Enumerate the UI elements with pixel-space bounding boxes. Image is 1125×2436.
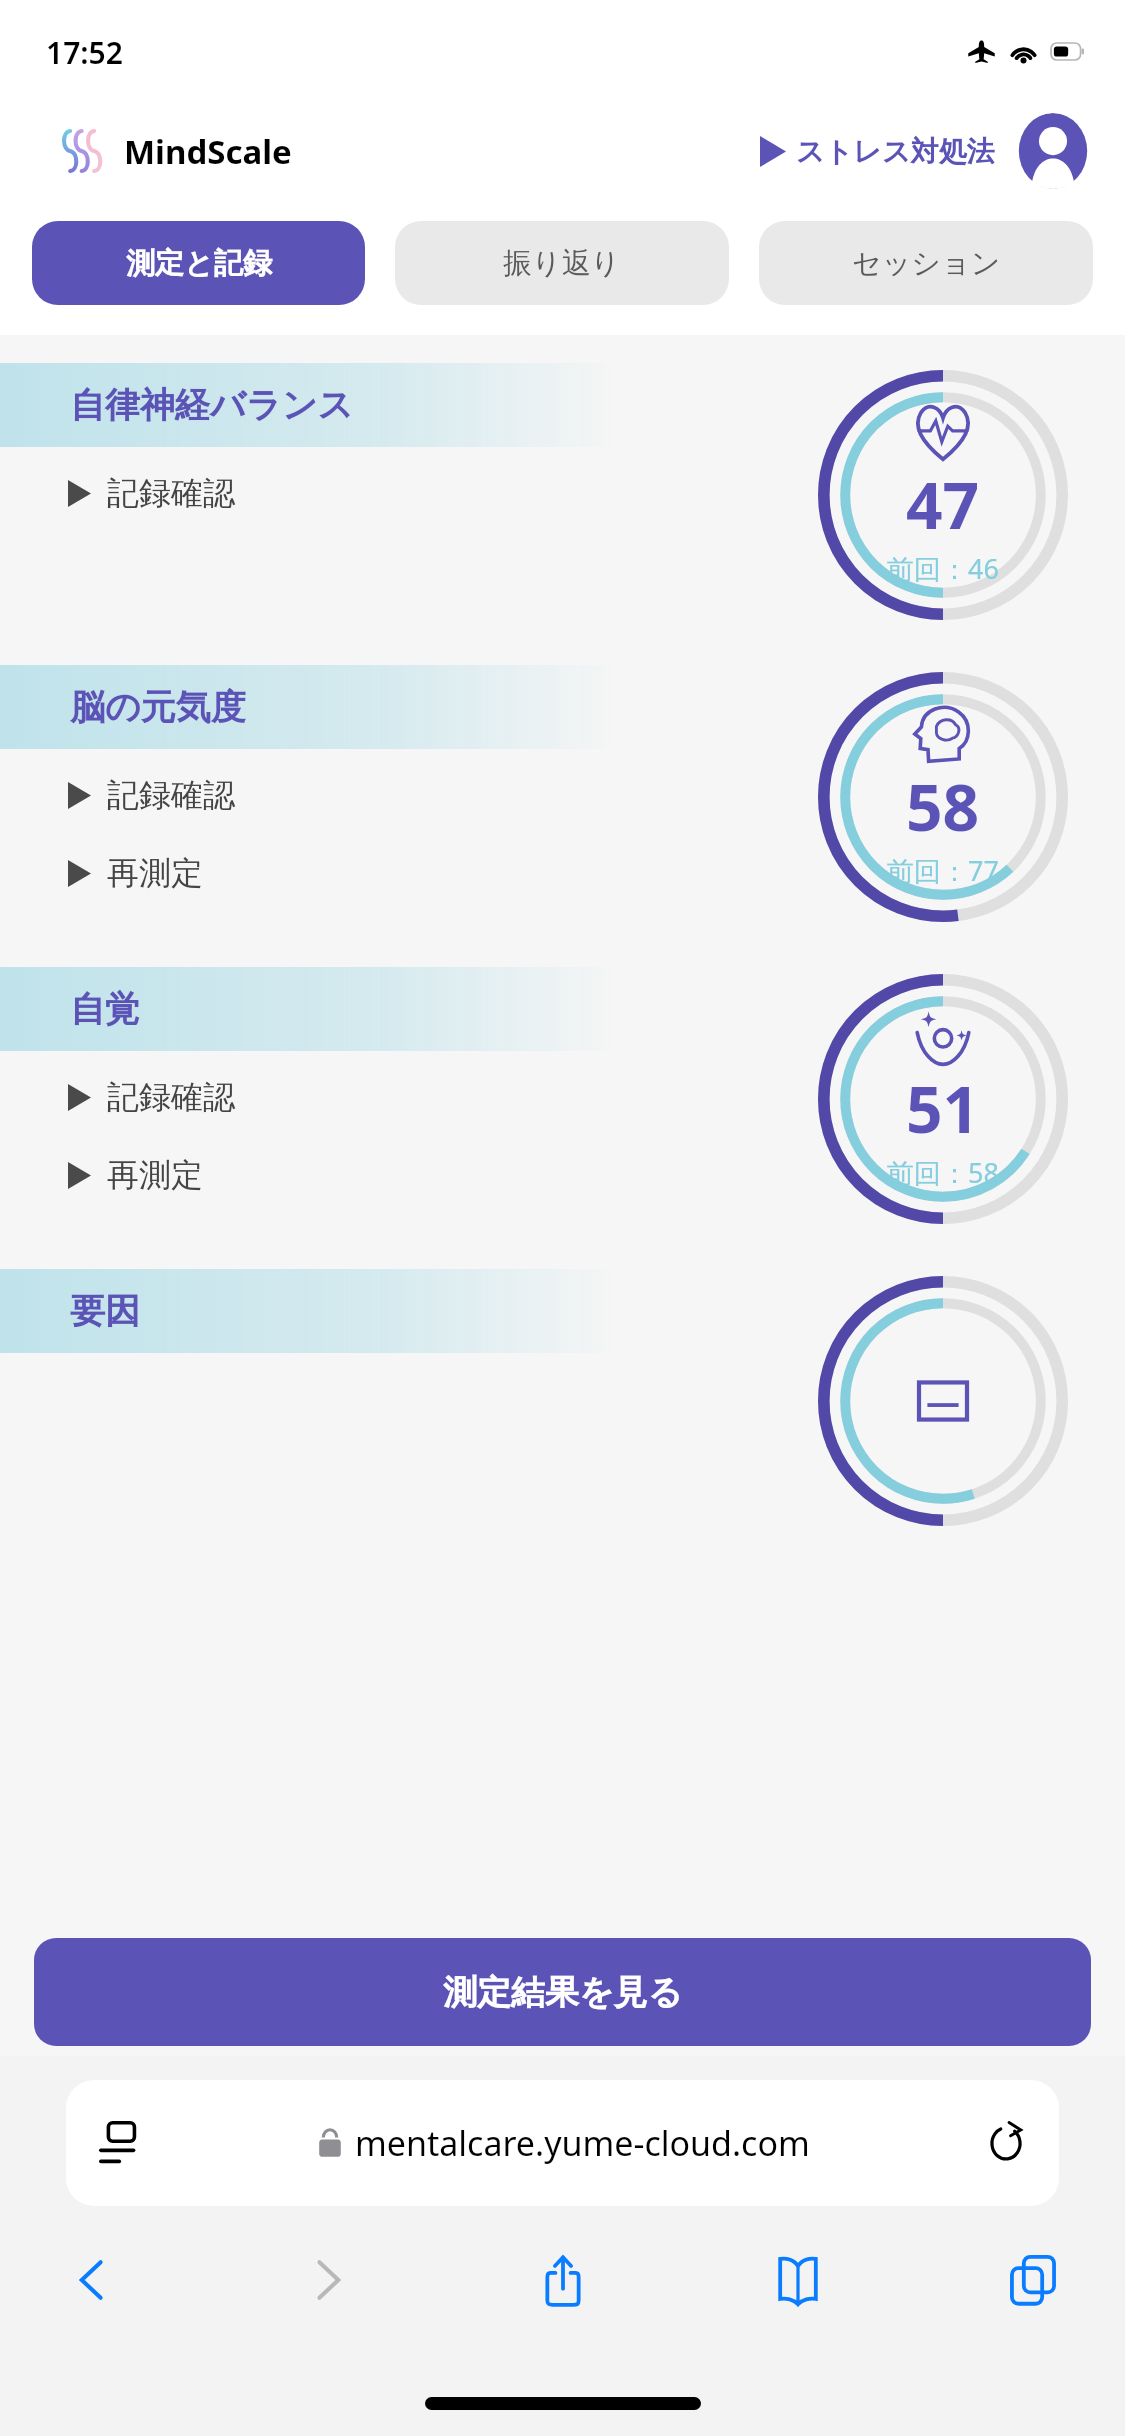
staticText: ストレス対処法 [796, 134, 995, 169]
staticText: 測定結果を見る [443, 1971, 683, 2014]
button[interactable]: 振り返り [395, 221, 729, 305]
button[interactable]: Forward [279, 2232, 375, 2328]
button[interactable]: 記録確認 [0, 1069, 540, 1125]
button[interactable]: 再測定 [0, 845, 540, 901]
staticText: 振り返り [503, 245, 621, 282]
staticText: 自覚 [70, 987, 140, 1031]
button[interactable]: セッション [759, 221, 1093, 305]
button[interactable]: ストレス対処法 [756, 124, 999, 179]
other: Reload [987, 2122, 1025, 2164]
staticText: 脳の元気度 [70, 685, 246, 729]
button[interactable]: Account [1015, 113, 1091, 189]
staticText: 再測定 [107, 1155, 203, 1195]
staticText: セッション [852, 245, 1001, 282]
staticText: 51 [906, 1065, 980, 1152]
button[interactable]: 脳の元気度 [0, 665, 1125, 967]
staticText: 前回：77 [887, 852, 999, 889]
button[interactable]: 要因 [0, 1269, 1125, 1571]
other: Page settings [100, 2120, 142, 2166]
staticText: 要因 [70, 1289, 140, 1333]
button[interactable]: Share [515, 2232, 611, 2328]
staticText: 自律神経バランス [70, 383, 354, 427]
button[interactable]: Back [44, 2232, 140, 2328]
staticText: 測定と記録 [126, 245, 272, 282]
button[interactable]: 自覚 [0, 967, 1125, 1269]
staticText: 記録確認 [107, 775, 235, 815]
button[interactable]: 記録確認 [0, 767, 540, 823]
staticText: 58 [906, 763, 980, 850]
button[interactable]: 測定結果を見る [34, 1938, 1091, 2046]
staticText: 前回：46 [887, 550, 999, 587]
staticText: 再測定 [107, 853, 203, 893]
staticText: 前回：58 [887, 1154, 999, 1191]
staticText: 記録確認 [107, 473, 235, 513]
button[interactable]: 測定と記録 [32, 221, 365, 305]
staticText: 記録確認 [107, 1077, 235, 1117]
button[interactable]: Bookmarks [750, 2232, 846, 2328]
button[interactable]: 記録確認 [0, 465, 540, 521]
staticText: 47 [906, 461, 980, 548]
button[interactable]: Page settings [66, 2080, 1059, 2206]
staticText: mentalcare.yume-cloud.com [355, 2120, 810, 2166]
button[interactable]: 再測定 [0, 1147, 540, 1203]
button[interactable]: 自律神経バランス [0, 363, 1125, 665]
staticText: 17:52 [46, 32, 123, 73]
staticText: MindScale [124, 129, 292, 174]
button[interactable]: Tabs [985, 2232, 1081, 2328]
